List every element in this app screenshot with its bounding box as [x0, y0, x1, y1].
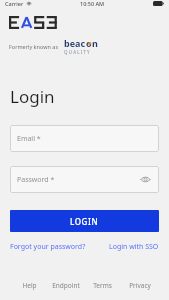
staticText: Help — [22, 281, 37, 290]
staticText: Q U A L I T Y — [64, 49, 90, 55]
button[interactable]: Show password — [139, 173, 152, 186]
staticText: Email * — [17, 134, 41, 144]
button[interactable]: Password * — [10, 166, 159, 193]
button[interactable]: Terms — [84, 281, 121, 290]
staticText: Carrier — [5, 0, 24, 7]
staticText: 10:50 AM — [80, 0, 105, 7]
staticText: LOGIN — [70, 216, 99, 227]
staticText: Terms — [93, 281, 112, 290]
staticText: Privacy — [129, 281, 151, 290]
button[interactable]: LOGIN — [10, 210, 159, 232]
staticText: Endpoint — [52, 281, 80, 290]
button[interactable]: Help — [11, 281, 47, 290]
staticText: Login — [10, 85, 55, 108]
staticText: o — [86, 37, 92, 49]
button[interactable]: Email * — [10, 125, 159, 152]
staticText: Formerly known as — [9, 43, 59, 50]
staticText: beac — [64, 37, 86, 49]
staticText: n — [92, 37, 98, 49]
button[interactable]: Forgot your password? — [10, 242, 86, 252]
button[interactable]: Endpoint — [47, 281, 84, 290]
button[interactable]: Login with SSO — [109, 242, 159, 252]
staticText: Password * — [17, 175, 55, 185]
button[interactable]: Privacy — [121, 281, 158, 290]
